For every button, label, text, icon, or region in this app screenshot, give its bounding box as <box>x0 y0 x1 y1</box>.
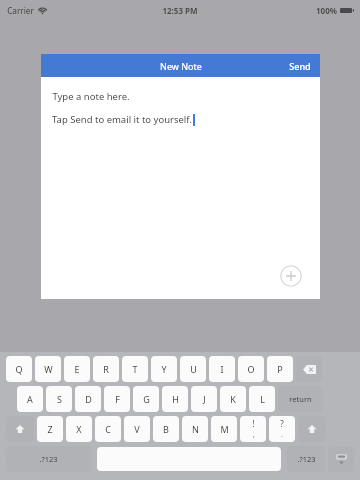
button[interactable]: Send <box>280 54 320 77</box>
button[interactable]: I <box>209 356 235 382</box>
staticText: W <box>44 363 53 375</box>
button[interactable]: G <box>133 386 159 412</box>
staticText: 12:53 PM <box>162 5 198 16</box>
staticText: Type a note here. <box>52 90 130 103</box>
staticText: I <box>220 363 224 375</box>
button[interactable]: D <box>75 386 101 412</box>
staticText: K <box>230 393 236 405</box>
button[interactable]: .?123 <box>287 446 325 472</box>
staticText: Y <box>161 363 167 375</box>
staticText: B <box>163 423 169 435</box>
button[interactable]: Space <box>97 447 281 471</box>
button[interactable]: X <box>66 416 92 442</box>
button[interactable]: Hide keyboard <box>328 446 354 472</box>
button[interactable]: Z <box>37 416 63 442</box>
staticText: L <box>260 393 265 405</box>
button[interactable]: B <box>153 416 179 442</box>
staticText: X <box>76 423 82 435</box>
button[interactable]: M <box>211 416 237 442</box>
button[interactable]: ! <box>240 416 266 442</box>
staticText: Send <box>289 60 311 72</box>
button[interactable]: C <box>95 416 121 442</box>
button[interactable]: L <box>249 386 275 412</box>
button[interactable]: V <box>124 416 150 442</box>
staticText: E <box>74 363 80 375</box>
button[interactable]: Shift <box>6 416 34 442</box>
staticText: H <box>172 393 179 405</box>
other: Backspace <box>303 365 316 374</box>
staticText: M <box>220 423 229 435</box>
staticText: P <box>277 363 283 375</box>
staticText: ? <box>280 418 284 429</box>
staticText: .?123 <box>39 454 58 464</box>
staticText: C <box>105 423 111 435</box>
staticText: V <box>134 423 140 435</box>
staticText: A <box>27 393 33 405</box>
button[interactable]: N <box>182 416 208 442</box>
staticText: Carrier <box>7 5 34 16</box>
button[interactable]: J <box>191 386 217 412</box>
button[interactable]: U <box>180 356 206 382</box>
button[interactable]: K <box>220 386 246 412</box>
button[interactable]: H <box>162 386 188 412</box>
button[interactable]: W <box>35 356 61 382</box>
staticText: return <box>289 394 312 404</box>
staticText: T <box>132 363 138 375</box>
staticText: S <box>57 393 62 405</box>
staticText: O <box>247 363 255 375</box>
staticText: Tap Send to email it to yourself. <box>52 113 192 126</box>
staticText: J <box>203 393 206 405</box>
other: Shift <box>15 424 25 434</box>
button[interactable]: R <box>93 356 119 382</box>
button[interactable]: Y <box>151 356 177 382</box>
button[interactable]: P <box>267 356 293 382</box>
staticText: Q <box>15 363 23 375</box>
button[interactable]: Q <box>6 356 32 382</box>
button[interactable]: T <box>122 356 148 382</box>
other: Shift <box>307 424 317 434</box>
button[interactable]: Backspace <box>296 356 322 382</box>
button[interactable]: return <box>278 386 323 412</box>
staticText: R <box>103 363 109 375</box>
staticText: N <box>192 423 199 435</box>
button[interactable]: Shift <box>298 416 326 442</box>
staticText: Z <box>47 423 53 435</box>
button[interactable]: S <box>46 386 72 412</box>
staticText: .?123 <box>297 454 316 464</box>
staticText: G <box>143 393 150 405</box>
other: Hide keyboard <box>335 454 348 465</box>
button[interactable]: .?123 <box>6 446 91 472</box>
staticText: U <box>190 363 197 375</box>
staticText: ! <box>252 418 255 429</box>
staticText: , <box>253 430 255 440</box>
staticText: . <box>281 430 283 440</box>
staticText: F <box>115 393 120 405</box>
button[interactable]: Add attachment <box>280 265 302 287</box>
staticText: New Note <box>160 60 202 72</box>
staticText: 100% <box>316 5 337 16</box>
button[interactable]: O <box>238 356 264 382</box>
button[interactable]: ? <box>269 416 295 442</box>
button[interactable]: E <box>64 356 90 382</box>
button[interactable]: A <box>17 386 43 412</box>
button[interactable]: F <box>104 386 130 412</box>
staticText: D <box>85 393 92 405</box>
